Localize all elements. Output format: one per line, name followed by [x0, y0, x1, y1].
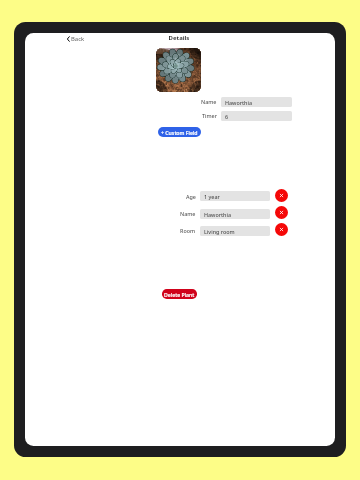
button[interactable]: Living room	[200, 226, 270, 236]
staticText: Details	[25, 34, 334, 42]
button[interactable]: + Custom Field	[158, 127, 201, 137]
staticText: Name	[180, 210, 196, 217]
staticText: Age	[186, 193, 196, 200]
button[interactable]: Remove Room	[275, 223, 288, 236]
button[interactable]: Back	[65, 33, 87, 45]
button[interactable]: Remove Age	[275, 189, 288, 202]
staticText: Haworthia	[204, 211, 232, 218]
staticText: Room	[180, 227, 196, 234]
button[interactable]: Remove Name	[275, 206, 288, 219]
button[interactable]: 6	[221, 111, 292, 121]
button[interactable]: Haworthia	[221, 97, 292, 107]
staticText: Name	[201, 98, 217, 105]
staticText: Delete Plant	[164, 291, 195, 298]
button[interactable]: Delete Plant	[162, 289, 197, 299]
staticText: 6	[225, 113, 229, 120]
staticText: 1 year	[204, 193, 220, 200]
staticText: Haworthia	[225, 99, 253, 106]
staticText: Living room	[204, 228, 235, 235]
staticText: Back	[71, 35, 85, 43]
button[interactable]: 1 year	[200, 191, 270, 201]
button[interactable]: Haworthia	[200, 209, 270, 219]
staticText: + Custom Field	[161, 129, 198, 136]
staticText: Timer	[202, 112, 217, 119]
button[interactable]: Plant photo	[156, 48, 201, 92]
